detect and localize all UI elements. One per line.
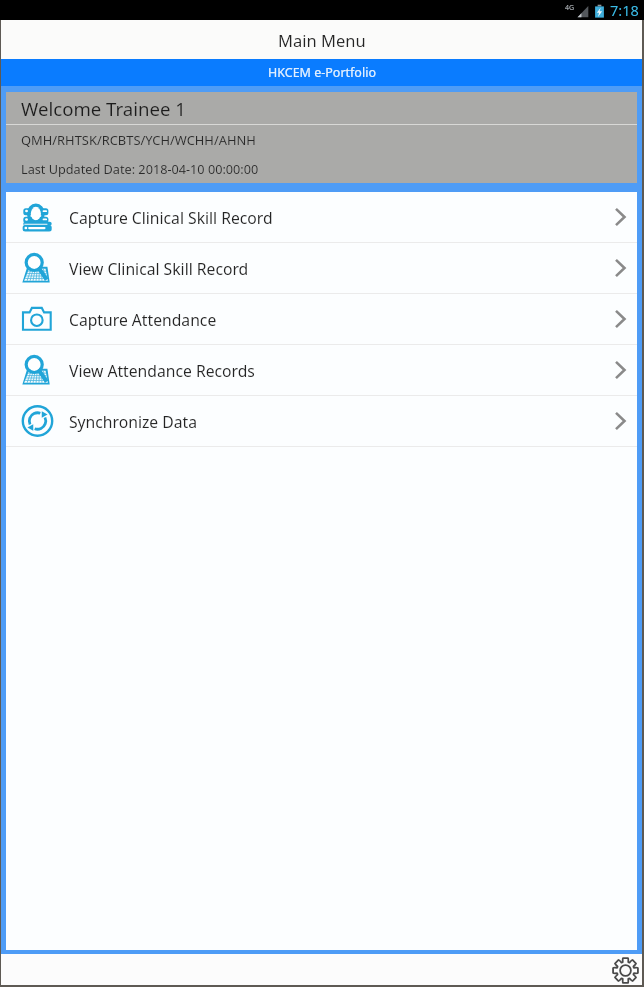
button[interactable]: Capture Attendance	[6, 294, 637, 344]
staticText: Capture Attendance	[69, 309, 217, 330]
staticText: QMH/RHTSK/RCBTS/YCH/WCHH/AHNH	[21, 131, 256, 149]
staticText: Welcome Trainee 1	[21, 96, 186, 121]
button[interactable]: Capture Clinical Skill Record	[6, 192, 637, 242]
staticText: Last Updated Date: 2018-04-10 00:00:00	[21, 160, 259, 177]
staticText: HKCEM e-Portfolio	[268, 64, 376, 81]
button[interactable]: Settings	[610, 955, 640, 985]
staticText: 4G	[565, 3, 575, 13]
staticText: View Attendance Records	[69, 360, 255, 381]
staticText: Synchronize Data	[69, 411, 197, 432]
staticText: Main Menu	[278, 29, 366, 51]
staticText: Capture Clinical Skill Record	[69, 207, 273, 228]
button[interactable]: View Clinical Skill Record	[6, 243, 637, 293]
button[interactable]: Synchronize Data	[6, 396, 637, 446]
button[interactable]: View Attendance Records	[6, 345, 637, 395]
staticText: 7:18	[610, 0, 639, 19]
staticText: View Clinical Skill Record	[69, 258, 249, 279]
